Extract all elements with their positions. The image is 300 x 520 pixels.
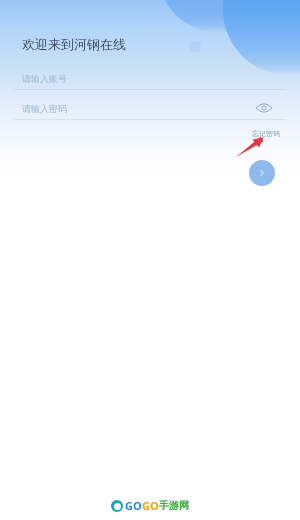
button[interactable]: 忘记密码: [248, 126, 284, 141]
staticText: GO: [125, 498, 142, 513]
staticText: 请输入密码: [22, 103, 67, 114]
button[interactable]: Login: [249, 160, 275, 186]
staticText: 忘记密码: [252, 129, 280, 138]
button[interactable]: Show password: [254, 98, 274, 118]
staticText: GO: [142, 498, 159, 513]
staticText: 欢迎来到河钢在线: [22, 36, 126, 52]
staticText: 请输入账号: [22, 73, 67, 84]
button[interactable]: 请输入密码: [0, 96, 300, 120]
staticText: 手游网: [159, 499, 189, 512]
button[interactable]: 请输入账号: [0, 66, 300, 90]
